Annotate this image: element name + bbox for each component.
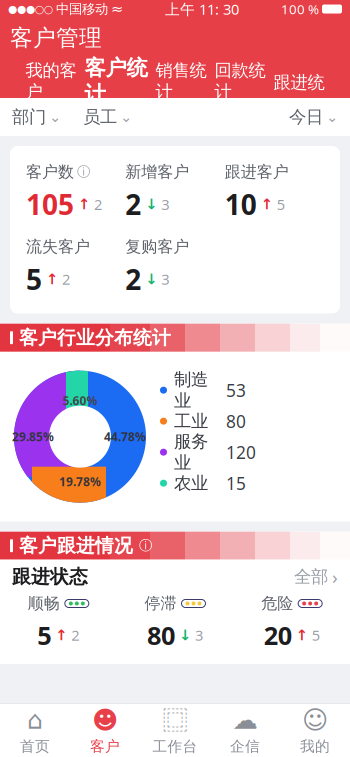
staticText: ☁ [232, 706, 257, 734]
staticText: 制造业 [174, 369, 208, 411]
staticText: 工作台 [152, 738, 197, 756]
staticText: ⌂ [27, 706, 43, 734]
staticText: 15 [226, 472, 246, 495]
staticText: 今日 [289, 106, 323, 128]
staticText: ≈ [111, 1, 123, 17]
button[interactable]: 工作台 [140, 704, 210, 757]
staticText: 跟进状态 [12, 565, 88, 588]
staticText: 10 [225, 186, 257, 223]
staticText: 全部 [294, 566, 328, 587]
staticText: 跟进客户 [225, 162, 289, 182]
button[interactable]: 首页 [0, 704, 70, 757]
staticText: 5.60% [62, 393, 97, 409]
staticText: 危险 [261, 594, 293, 613]
button[interactable]: 销售统计 [151, 58, 210, 98]
button[interactable]: 企信 [210, 704, 280, 757]
button[interactable]: 部门 [12, 100, 61, 134]
staticText: 企信 [230, 737, 260, 755]
staticText: 3 [161, 269, 169, 289]
staticText: 上午 11: 30 [165, 0, 239, 19]
staticText: ↓ [179, 627, 191, 643]
staticText: 顺畅 [28, 594, 60, 613]
staticText: 中国移动 [56, 1, 108, 17]
button[interactable]: 客户 [70, 704, 140, 757]
staticText: ↓ [145, 271, 157, 287]
staticText: ☻ [92, 706, 118, 734]
staticText: 停滞 [144, 594, 176, 613]
staticText: 2 [94, 194, 102, 214]
staticText: 客户数 [26, 162, 74, 182]
staticText: › [332, 564, 338, 589]
staticText: ☺ [302, 706, 328, 734]
staticText: ⌄ [49, 109, 61, 125]
staticText: 我的 [300, 737, 330, 755]
staticText: ↑ [78, 196, 90, 212]
staticText: 3 [161, 194, 169, 214]
staticText: 20 [264, 618, 292, 652]
staticText: 客户管理 [10, 24, 102, 52]
staticText: 100 % [281, 0, 319, 18]
staticText: ↓ [145, 196, 157, 212]
button[interactable]: 客户统计 [80, 58, 151, 98]
staticText: 部门 [12, 106, 46, 128]
staticText: 80 [226, 410, 246, 433]
staticText: 3 [195, 625, 203, 645]
staticText: 客户行业分布统计 [19, 326, 171, 349]
staticText: 5 [312, 625, 320, 645]
staticText: 19.78% [59, 474, 101, 490]
staticText: 44.78% [104, 429, 146, 445]
staticText: ↑ [296, 627, 308, 643]
staticText: ↑ [261, 196, 273, 212]
staticText: 5 [277, 194, 285, 214]
button[interactable]: 我的客户 [21, 58, 80, 98]
button[interactable]: 跟进统 [269, 58, 328, 98]
staticText: ⿴ [162, 705, 187, 734]
staticText: ↑ [55, 627, 67, 643]
staticText: 流失客户 [26, 237, 90, 256]
staticText: 客户 [90, 737, 120, 755]
staticText: 客户统计 [84, 55, 147, 107]
staticText: 销售统计 [155, 60, 206, 102]
staticText: 105 [26, 186, 74, 223]
button[interactable]: 员工 [83, 100, 132, 134]
button[interactable]: 我的 [280, 704, 350, 757]
staticText: 服务业 [174, 431, 208, 473]
staticText: ●●●○○ [8, 3, 53, 15]
staticText: 客户跟进情况 [19, 534, 133, 557]
button[interactable]: 跟进状态 [0, 560, 350, 594]
staticText: 新增客户 [125, 162, 189, 182]
staticText: 5 [37, 618, 51, 652]
staticText: 农业 [174, 472, 208, 494]
staticText: 80 [147, 618, 175, 652]
staticText: 2 [125, 186, 141, 223]
staticText: 2 [62, 269, 70, 289]
staticText: 工业 [174, 410, 208, 432]
staticText: 2 [125, 260, 141, 298]
staticText: 29.85% [12, 429, 54, 445]
staticText: ↑ [46, 271, 58, 287]
staticText: ⓘ [139, 537, 152, 554]
staticText: ⌄ [326, 109, 338, 125]
staticText: 跟进统 [273, 72, 324, 93]
staticText: 复购客户 [125, 237, 189, 256]
staticText: 5 [26, 260, 42, 298]
button[interactable]: 今日 [289, 100, 338, 134]
staticText: ⌄ [120, 109, 132, 125]
staticText: 首页 [20, 737, 50, 755]
staticText: 120 [226, 441, 256, 464]
button[interactable]: 回款统计 [210, 58, 269, 98]
staticText: 我的客户 [25, 60, 76, 102]
staticText: 2 [71, 625, 79, 645]
staticText: 员工 [83, 106, 117, 128]
staticText: 回款统计 [214, 60, 265, 102]
staticText: 53 [226, 379, 246, 402]
staticText: ⓘ [77, 164, 90, 180]
